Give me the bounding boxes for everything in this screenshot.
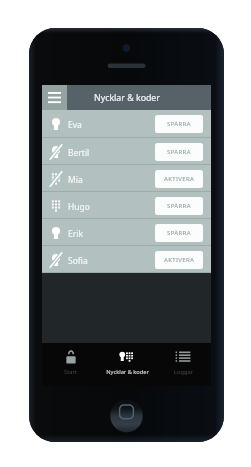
staticText: SPÄRRA [167,229,191,237]
staticText: Eva [68,119,154,131]
staticText: SPÄRRA [167,202,191,210]
button[interactable]: Start [42,343,99,386]
staticText: AKTIVERA [164,175,195,183]
staticText: Start [64,368,77,376]
staticText: Bertil [68,147,154,159]
staticText: Sofia [68,255,154,267]
staticText: Nycklar & koder [106,368,149,376]
button[interactable]: Mia [42,165,211,192]
button[interactable]: Nycklar & koder [99,343,155,386]
button[interactable]: Erik [42,219,211,246]
staticText: Nycklar & koder [94,92,160,104]
staticText: SPÄRRA [167,148,191,156]
staticText: Loggar [174,368,193,376]
button[interactable]: Sofia [42,246,211,273]
button[interactable]: Bertil [42,138,211,165]
staticText: AKTIVERA [164,256,195,264]
staticText: Hugo [68,201,154,213]
staticText: Erik [68,228,154,240]
button[interactable]: Menu [42,85,67,110]
button[interactable]: Loggar [155,343,211,386]
button[interactable]: Eva [42,110,211,138]
staticText: Mia [68,174,154,186]
button[interactable]: Hugo [42,192,211,219]
staticText: SPÄRRA [167,120,191,128]
